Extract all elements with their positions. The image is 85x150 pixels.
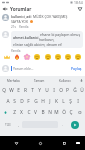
staticText: F [27,98,30,105]
button[interactable]: S [11,96,18,107]
button[interactable]: W [8,85,15,96]
staticText: C [27,109,31,116]
staticText: J [49,98,51,105]
button[interactable]: Back [11,138,22,149]
staticText: ?123 [5,123,11,127]
button[interactable]: Shift [0,107,11,118]
button[interactable]: O [57,85,64,96]
button[interactable]: P [64,85,71,96]
staticText: K [55,98,58,105]
button[interactable]: K [53,96,60,107]
button[interactable]: F [25,96,32,107]
button[interactable]: Emoji reaction [23,53,31,61]
button[interactable]: A [4,96,11,107]
staticText: V [34,109,37,116]
staticText: X [20,109,23,116]
staticText: O [59,87,63,94]
button[interactable]: Voice input [78,76,85,85]
staticText: M [54,109,59,116]
staticText: MÜZİK ÇOK YAKIŞMIŞ [32,14,68,19]
staticText: Yanıtla [11,49,21,52]
button[interactable]: Tamam [26,76,52,85]
staticText: B [41,109,45,116]
staticText: N [48,109,52,116]
button[interactable]: G [32,96,39,107]
staticText: Z [13,109,16,116]
button[interactable]: T [29,85,36,96]
staticText: S [13,98,16,105]
staticText: Q [2,87,6,94]
button[interactable]: N [46,107,53,118]
staticText: efsane bi paylaşım olmuş harikasın, [39,32,81,42]
staticText: Ö [62,109,66,116]
button[interactable]: Backspace [74,107,85,118]
button[interactable]: Ü [78,85,85,96]
staticText: elinize sağlık abicim, devam et! [13,42,63,47]
button[interactable]: H [39,96,46,107]
staticText: ahmet.kullanici [13,35,39,40]
button[interactable]: D [18,96,25,107]
button[interactable]: Switch keyboard [73,138,83,148]
button[interactable]: Home [35,138,46,149]
staticText: D [20,98,24,105]
staticText: T [31,87,34,94]
button[interactable]: Emoji reaction [44,53,52,61]
staticText: SAYFA YOK [11,19,29,24]
button[interactable]: Z [11,107,18,118]
staticText: kullanici_adi [11,14,32,19]
button[interactable]: Y [36,85,43,96]
staticText: . [62,123,63,127]
button[interactable]: X [18,107,25,118]
button[interactable]: R [22,85,29,96]
button[interactable]: Kullanıcı [52,76,78,85]
button[interactable]: Emoji reaction [33,53,41,61]
button[interactable]: Ş [67,96,74,107]
button[interactable]: B [39,107,46,118]
button[interactable]: Emoji reaction [13,53,21,61]
staticText: Yorumlar [10,6,32,12]
staticText: I [53,87,55,94]
button[interactable]: U [43,85,50,96]
staticText: W [9,87,14,94]
button[interactable]: kullanici_adi [0,14,85,29]
button[interactable]: I [74,96,81,107]
staticText: Kullanıcı [59,79,71,83]
button[interactable]: ?123 [1,118,14,131]
button[interactable]: Share [76,5,83,12]
button[interactable]: Back [2,6,8,12]
button[interactable]: Ç [67,107,74,118]
staticText: Ü [80,87,84,94]
button[interactable]: Send [71,121,79,129]
button[interactable]: Emoji reaction [3,53,11,61]
staticText: Y [38,87,41,94]
button[interactable]: Ö [60,107,67,118]
button[interactable]: M [53,107,60,118]
button[interactable]: Emoji reaction [74,53,82,61]
button[interactable]: L [60,96,67,107]
staticText: Paylaş [71,66,82,71]
staticText: 21s Yanıtla [11,25,29,29]
button[interactable]: ahmet.kullanici [0,31,85,52]
button[interactable]: Emoji reaction [64,53,72,61]
button[interactable]: Ğ [71,85,78,96]
button[interactable]: Emoji reaction [54,53,62,61]
staticText: , [18,123,19,127]
staticText: A [6,98,10,105]
button[interactable]: Recent apps [59,138,70,149]
staticText: I [77,98,79,105]
staticText: Ğ [73,87,77,94]
button[interactable]: C [25,107,32,118]
button[interactable]: Merhaba [0,76,26,85]
button[interactable]: Q [0,85,8,96]
staticText: P [66,87,69,94]
staticText: E [17,87,20,94]
button[interactable]: E [15,85,22,96]
button[interactable]: Comma [14,118,22,131]
button[interactable]: V [32,107,39,118]
button[interactable]: Paylaş [70,65,83,72]
staticText: Tamam [34,79,45,83]
button[interactable]: J [46,96,53,107]
button[interactable]: I [50,85,57,96]
